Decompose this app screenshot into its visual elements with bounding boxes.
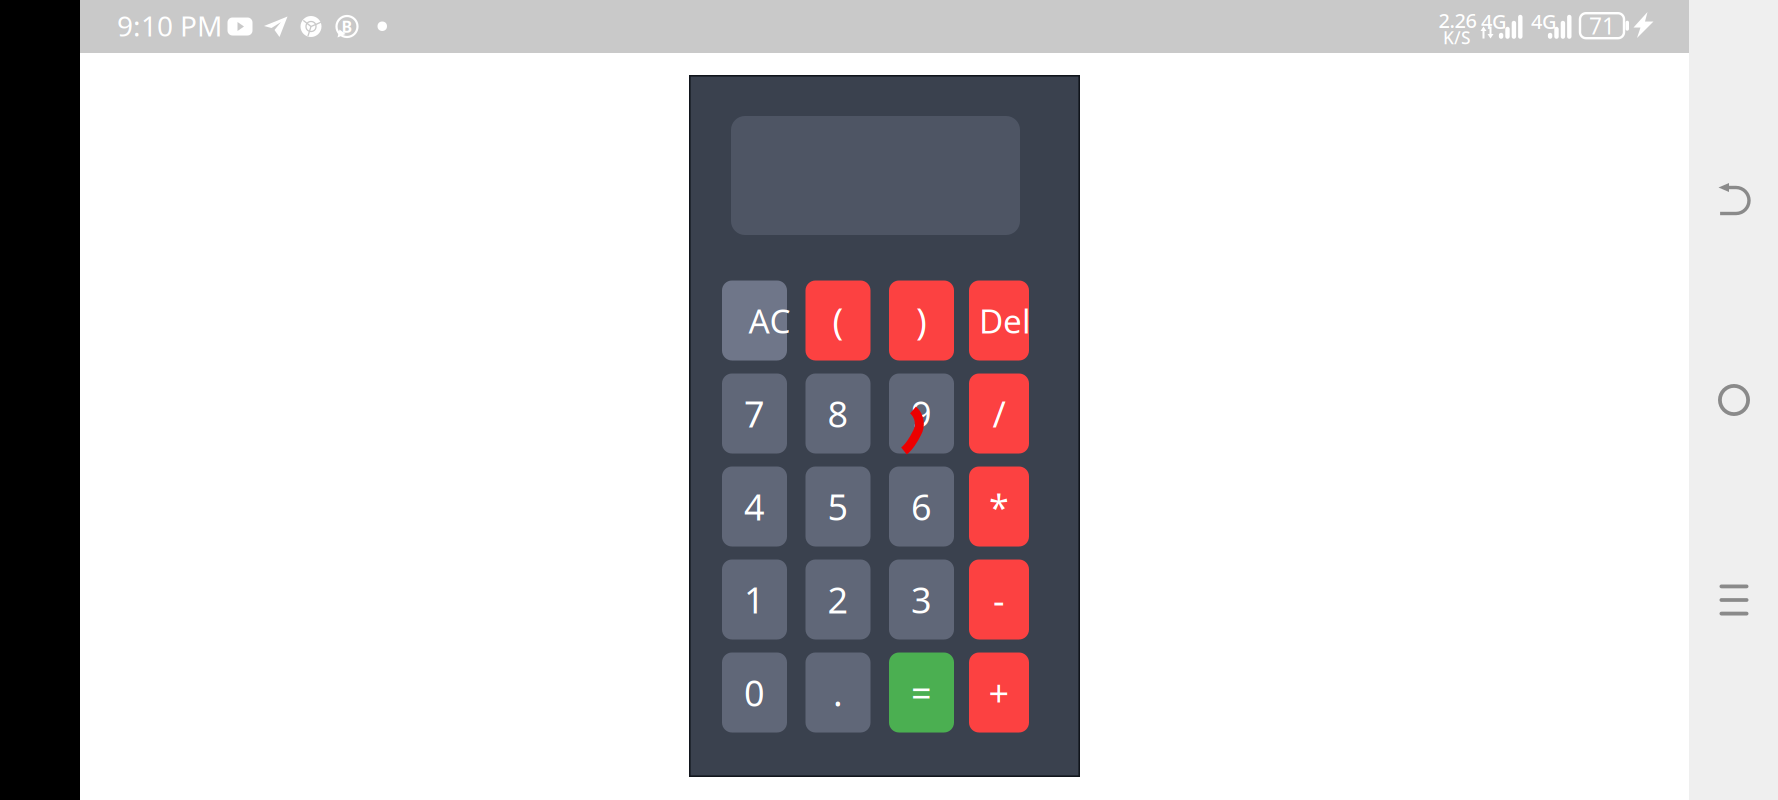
button[interactable]: + [969, 652, 1029, 732]
staticText: 1 [744, 576, 765, 623]
button[interactable]: 4 [722, 466, 787, 546]
staticText: 71 [1589, 11, 1615, 41]
button[interactable]: 8 [805, 373, 870, 453]
button[interactable]: 3 [889, 559, 954, 639]
staticText: 0 [744, 669, 765, 716]
staticText: 4 [744, 483, 765, 530]
button[interactable]: Home [1711, 377, 1757, 423]
staticText: / [992, 390, 1005, 437]
button[interactable]: ) [889, 280, 954, 360]
button[interactable]: = [889, 652, 954, 732]
staticText: ) [916, 297, 927, 344]
button[interactable]: 2 [805, 559, 870, 639]
button[interactable]: 9 [889, 373, 954, 453]
staticText: 4G [1531, 8, 1557, 35]
staticText: K/S [1443, 26, 1471, 49]
staticText: . [833, 669, 843, 716]
staticText: 7 [744, 390, 765, 437]
button[interactable]: 5 [805, 466, 870, 546]
staticText: 4G [1481, 8, 1507, 35]
staticText: = [911, 669, 932, 716]
button[interactable]: * [969, 466, 1029, 546]
staticText: AC [748, 298, 790, 343]
staticText: 2.26 [1438, 7, 1476, 34]
staticText: ( [832, 297, 843, 344]
staticText: 9:10 PM [117, 7, 222, 44]
button[interactable]: - [969, 559, 1029, 639]
button[interactable]: ( [805, 280, 870, 360]
button[interactable]: AC [722, 280, 787, 360]
button[interactable]: Recent apps [1711, 577, 1757, 623]
button[interactable]: . [805, 652, 870, 732]
staticText: 2 [827, 576, 848, 623]
staticText: 3 [911, 576, 932, 623]
staticText: 8 [827, 390, 848, 437]
button[interactable]: 0 [722, 652, 787, 732]
staticText: + [988, 669, 1009, 716]
staticText: * [989, 483, 1009, 530]
staticText: Del [979, 298, 1031, 343]
staticText: 5 [827, 483, 848, 530]
button[interactable]: 7 [722, 373, 787, 453]
button[interactable]: / [969, 373, 1029, 453]
staticText: 6 [911, 483, 932, 530]
button[interactable]: 1 [722, 559, 787, 639]
staticText: 9 [911, 390, 932, 437]
staticText: - [993, 576, 1005, 623]
button[interactable]: Back [1711, 177, 1757, 223]
button[interactable]: Del [969, 280, 1029, 360]
staticText: B [341, 16, 352, 37]
button[interactable]: 6 [889, 466, 954, 546]
